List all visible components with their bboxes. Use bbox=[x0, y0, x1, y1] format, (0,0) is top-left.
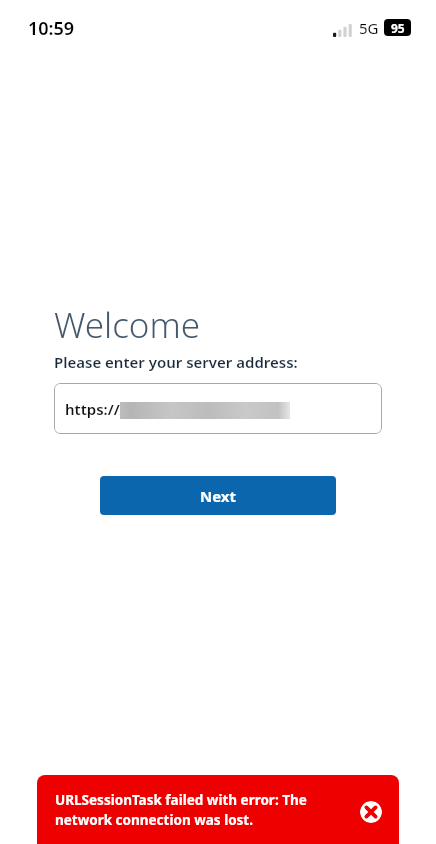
staticText: 5G bbox=[359, 18, 379, 38]
button[interactable]: Next bbox=[100, 476, 336, 515]
button[interactable]: https:// bbox=[54, 383, 382, 434]
button[interactable]: URLSessionTask failed with error: The ne… bbox=[37, 775, 399, 844]
staticText: 10:59 bbox=[28, 16, 75, 41]
staticText: Welcome bbox=[54, 301, 201, 349]
staticText: Please enter your server address: bbox=[54, 352, 298, 372]
staticText: URLSessionTask failed with error: The ne… bbox=[55, 791, 355, 829]
staticText: https:// bbox=[65, 399, 120, 419]
staticText: 95 bbox=[391, 20, 405, 36]
button[interactable]: Dismiss error bbox=[360, 801, 382, 823]
staticText: Next bbox=[200, 486, 237, 506]
